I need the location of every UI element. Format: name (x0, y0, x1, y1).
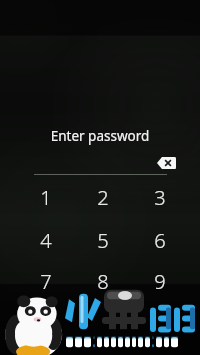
button[interactable]: Delete (151, 154, 181, 172)
staticText: 9 (154, 268, 166, 295)
button[interactable]: 5 (75, 220, 131, 260)
button[interactable]: 3 (132, 177, 188, 217)
staticText: 6 (154, 227, 166, 254)
staticText: 4 (40, 227, 52, 254)
staticText: 1 (40, 184, 52, 211)
button[interactable]: 4 (18, 220, 74, 260)
button[interactable]: 9 (132, 261, 188, 301)
staticText: 2 (97, 184, 109, 211)
staticText: 8 (97, 268, 109, 295)
button[interactable]: 6 (132, 220, 188, 260)
button[interactable]: 8 (75, 261, 131, 301)
button[interactable]: 1 (18, 177, 74, 217)
staticText: 5 (97, 227, 109, 254)
staticText: Enter password (0, 127, 200, 145)
staticText: 7 (40, 268, 52, 295)
staticText: 3 (154, 184, 166, 211)
button[interactable]: 2 (75, 177, 131, 217)
button[interactable]: 7 (18, 261, 74, 301)
